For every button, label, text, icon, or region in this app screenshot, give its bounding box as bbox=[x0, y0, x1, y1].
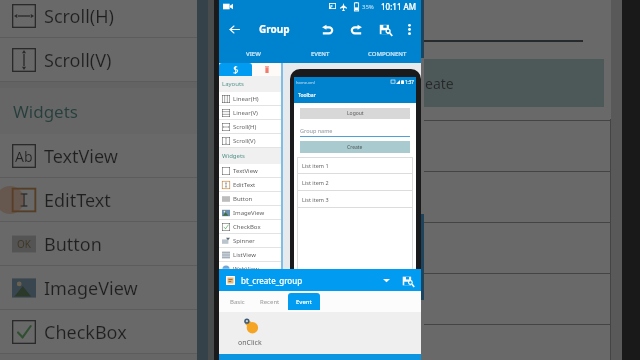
staticText: ImageView bbox=[44, 276, 138, 301]
staticText: eate bbox=[425, 74, 454, 93]
staticText: Scroll(H) bbox=[44, 4, 114, 29]
button[interactable]: Linear(V) bbox=[219, 106, 281, 120]
staticText: Toolbar bbox=[298, 92, 316, 99]
staticText: 10:11 AM bbox=[381, 1, 417, 12]
staticText: Linear(H) bbox=[233, 95, 259, 103]
staticText: Layouts bbox=[222, 80, 244, 88]
button[interactable]: Delete bbox=[252, 63, 281, 76]
staticText: Event bbox=[296, 298, 312, 306]
staticText: bt_create_group bbox=[241, 275, 303, 286]
button[interactable]: onClick bbox=[232, 316, 268, 348]
staticText: Group name bbox=[300, 127, 333, 134]
button[interactable]: Redo bbox=[343, 16, 369, 42]
staticText: EditText bbox=[44, 188, 111, 213]
staticText: TextView bbox=[44, 144, 118, 169]
staticText: ImageView bbox=[233, 209, 265, 217]
button[interactable]: More options bbox=[399, 19, 419, 39]
staticText: List item 1 bbox=[302, 162, 329, 169]
staticText: 35% bbox=[362, 3, 374, 11]
button[interactable]: Create bbox=[300, 141, 410, 153]
staticText: onClick bbox=[238, 338, 262, 348]
staticText: List item 3 bbox=[302, 196, 329, 203]
staticText: Button bbox=[233, 195, 253, 203]
button[interactable]: List item 2 bbox=[297, 174, 413, 190]
staticText: CheckBox bbox=[233, 223, 261, 231]
button[interactable]: List item 1 bbox=[297, 157, 413, 173]
button[interactable]: Scroll(H) bbox=[219, 120, 281, 134]
button[interactable]: EVENT bbox=[287, 45, 354, 63]
button[interactable]: Linear(H) bbox=[219, 92, 281, 106]
button[interactable]: Logout bbox=[300, 108, 410, 119]
staticText: ListView bbox=[233, 251, 256, 259]
staticText: Recent bbox=[260, 298, 280, 306]
button[interactable]: Save bbox=[372, 16, 398, 42]
button[interactable]: COMPONENT bbox=[354, 45, 421, 63]
button[interactable]: Recent bbox=[256, 291, 284, 312]
staticText: home.xml bbox=[296, 80, 315, 85]
staticText: EditText bbox=[233, 181, 256, 189]
button[interactable]: Basic bbox=[223, 291, 251, 312]
staticText: Scroll(V) bbox=[44, 48, 112, 73]
staticText: TextView bbox=[233, 167, 258, 175]
staticText: VIEW bbox=[246, 50, 261, 58]
staticText: EVENT bbox=[311, 50, 330, 58]
staticText: 1:37 bbox=[405, 79, 414, 85]
button[interactable]: Event bbox=[288, 293, 320, 310]
staticText: Widgets bbox=[222, 152, 245, 160]
button[interactable]: Widgets palette bbox=[219, 63, 252, 76]
staticText: Widgets bbox=[13, 100, 78, 123]
button[interactable]: Scroll(V) bbox=[219, 134, 281, 148]
staticText: OK bbox=[17, 237, 31, 251]
button[interactable]: Button bbox=[219, 192, 281, 206]
button[interactable]: EditText bbox=[219, 178, 281, 192]
staticText: Linear(V) bbox=[233, 109, 258, 117]
button[interactable]: CheckBox bbox=[219, 220, 281, 234]
staticText: Group bbox=[259, 22, 290, 36]
button[interactable]: Spinner bbox=[219, 234, 281, 248]
staticText: List item 2 bbox=[302, 179, 329, 186]
staticText: WebView bbox=[233, 265, 259, 273]
button[interactable]: VIEW bbox=[219, 45, 287, 63]
button[interactable]: Save project bbox=[399, 272, 416, 289]
staticText: Button bbox=[44, 232, 102, 257]
staticText: COMPONENT bbox=[368, 50, 407, 58]
button[interactable]: Back bbox=[219, 13, 250, 45]
button[interactable]: List item 3 bbox=[297, 191, 413, 207]
staticText: Create bbox=[347, 144, 363, 151]
button[interactable]: WebView bbox=[219, 262, 281, 276]
button[interactable]: Expand bbox=[379, 273, 393, 287]
staticText: Scroll(V) bbox=[233, 137, 256, 145]
staticText: Basic bbox=[230, 298, 245, 306]
button[interactable]: TextView bbox=[219, 164, 281, 178]
staticText: Logout bbox=[347, 110, 364, 117]
button[interactable]: ImageView bbox=[219, 206, 281, 220]
staticText: Spinner bbox=[233, 237, 255, 245]
button[interactable]: Undo bbox=[314, 16, 340, 42]
button[interactable]: ListView bbox=[219, 248, 281, 262]
staticText: CheckBox bbox=[44, 320, 127, 345]
staticText: Ab bbox=[15, 147, 33, 166]
staticText: Scroll(H) bbox=[233, 123, 257, 131]
